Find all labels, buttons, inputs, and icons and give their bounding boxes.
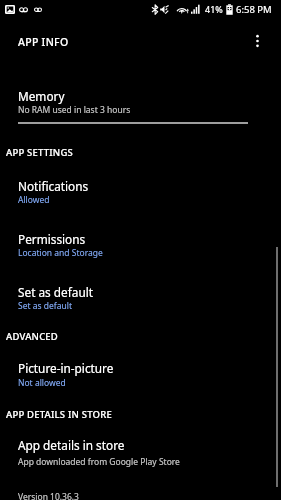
staticText: Notifications bbox=[18, 178, 89, 194]
button[interactable]: Set as default bbox=[0, 272, 281, 325]
staticText: App downloaded from Google Play Store bbox=[18, 456, 180, 468]
staticText: 41% bbox=[205, 3, 223, 15]
staticText: Not allowed bbox=[18, 377, 66, 389]
staticText: Version 10.36.3 bbox=[18, 491, 79, 500]
staticText: Set as default bbox=[18, 300, 73, 312]
staticText: App details in store bbox=[18, 437, 125, 453]
staticText: Permissions bbox=[18, 231, 86, 247]
staticText: 6:58 PM bbox=[236, 3, 272, 16]
staticText: Set as default bbox=[18, 284, 93, 300]
button[interactable]: Memory bbox=[0, 76, 281, 120]
button[interactable]: More options bbox=[244, 28, 270, 54]
button[interactable]: Permissions bbox=[0, 219, 281, 272]
staticText: APP INFO bbox=[18, 35, 69, 49]
staticText: APP DETAILS IN STORE bbox=[6, 408, 112, 421]
button[interactable]: Notifications bbox=[0, 166, 281, 219]
staticText: No RAM used in last 3 hours bbox=[18, 104, 131, 116]
staticText: Allowed bbox=[18, 194, 50, 206]
staticText: APP SETTINGS bbox=[6, 146, 73, 159]
staticText: Picture-in-picture bbox=[18, 360, 114, 376]
staticText: Memory bbox=[18, 88, 65, 104]
staticText: Location and Storage bbox=[18, 247, 103, 259]
button[interactable]: App details in store bbox=[0, 425, 281, 478]
button[interactable]: Picture-in-picture bbox=[0, 348, 281, 401]
staticText: ADVANCED bbox=[6, 330, 58, 343]
